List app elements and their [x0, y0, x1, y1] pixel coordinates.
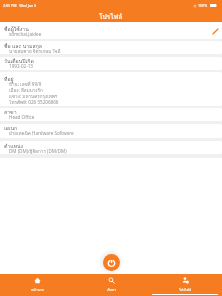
- staticText: โปรไฟล์: [179, 287, 191, 292]
- staticText: บ้าน: เลขที่ 99/9: [9, 81, 42, 88]
- staticText: สาขา: [4, 108, 17, 116]
- staticText: หน้าแรก: [31, 287, 44, 292]
- staticText: นายสมชาย จิตรเกษม ใจดี: [9, 48, 61, 54]
- staticText: ตำแหน่ง: [4, 142, 24, 150]
- staticText: โทรศัพท์: 026 55206866: [9, 99, 59, 106]
- staticText: ค้นหา: [107, 287, 116, 292]
- staticText: วันเดือนปีเกิด: [4, 57, 34, 65]
- staticText: 2:05 PM Wed Jun 5: [3, 3, 37, 8]
- staticText: somchai.jaidee: [9, 31, 42, 37]
- button[interactable]: Edit: [208, 24, 222, 38]
- button[interactable]: แผนก: [0, 124, 222, 138]
- staticText: ชื่อ และ นามสกุล: [4, 42, 43, 50]
- button[interactable]: ชื่อผู้ใช้งาน: [0, 22, 222, 39]
- button[interactable]: ตำแหน่ง: [0, 141, 222, 154]
- button[interactable]: โปรไฟล์: [148, 274, 222, 296]
- staticText: แขวง: มหานครกรุงเทพฯ: [9, 93, 58, 100]
- button[interactable]: ที่อยู่: [0, 72, 222, 106]
- staticText: เมือง: สีลมบางรัก: [9, 87, 43, 94]
- staticText: แผนก: [4, 124, 18, 132]
- button[interactable]: วันเดือนปีเกิด: [0, 57, 222, 70]
- staticText: 1992-02-13: [9, 63, 33, 69]
- staticText: ชื่อผู้ใช้งาน: [4, 25, 29, 33]
- staticText: ที่อยู่: [4, 75, 14, 83]
- button[interactable]: ชื่อ และ นามสกุล: [0, 41, 222, 54]
- staticText: ฝ่ายเทคนิค Hardware Software: [9, 130, 74, 137]
- button[interactable]: ค้นหา: [74, 274, 148, 296]
- staticText: 100%: [198, 3, 208, 8]
- button[interactable]: สาขา: [0, 108, 222, 121]
- staticText: โปรไฟล์: [99, 11, 123, 21]
- staticText: Head Office: [9, 114, 35, 120]
- button[interactable]: หน้าแรก: [0, 274, 74, 296]
- staticText: DM (DM)/ผู้จัดการ (DM/DM): [9, 148, 67, 154]
- button[interactable]: Power: [103, 254, 120, 271]
